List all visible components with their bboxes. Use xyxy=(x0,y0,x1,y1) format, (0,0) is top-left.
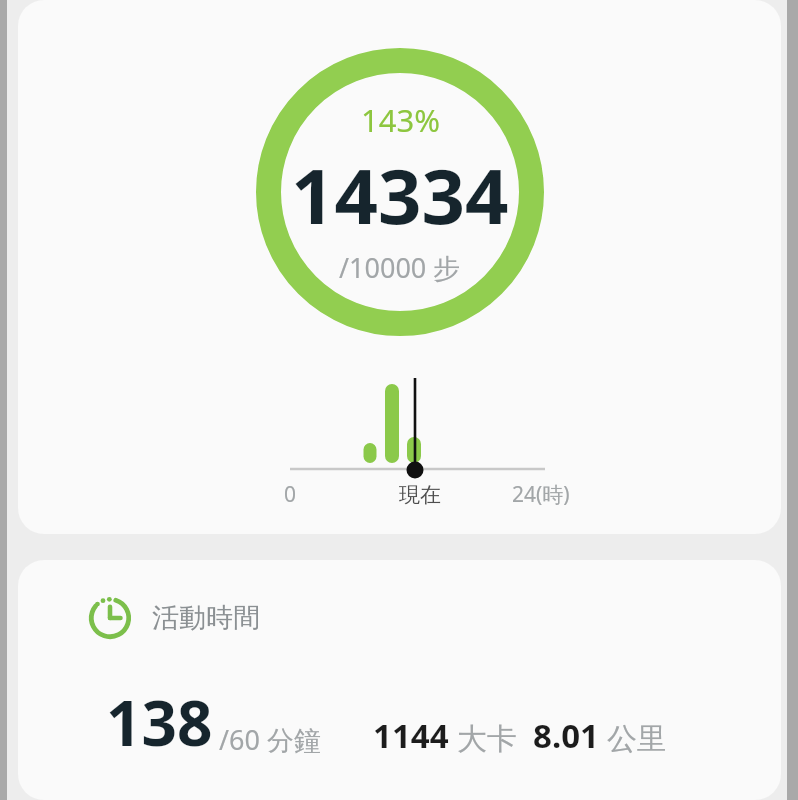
staticText: 24(時) xyxy=(512,480,570,509)
staticText: 8.01 xyxy=(533,713,599,758)
staticText: 138 xyxy=(106,680,213,764)
other: Activity time xyxy=(86,594,134,642)
staticText: 公里 xyxy=(607,720,667,758)
staticText: 143% xyxy=(361,99,440,141)
staticText: /60 分鐘 xyxy=(219,721,321,758)
staticText: 大卡 xyxy=(457,720,517,758)
staticText: 現在 xyxy=(399,482,441,508)
staticText: 14334 xyxy=(291,143,509,247)
staticText: 1144 xyxy=(373,713,449,758)
staticText: 活動時間 xyxy=(152,601,260,635)
staticText: 0 xyxy=(284,480,297,509)
button[interactable]: 143% xyxy=(18,0,781,534)
button[interactable]: Activity time xyxy=(18,560,781,800)
staticText: /10000 步 xyxy=(339,249,461,286)
